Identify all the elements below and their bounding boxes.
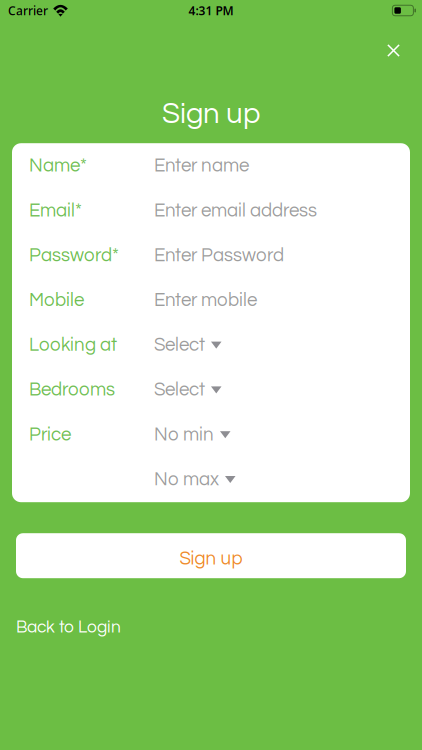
button[interactable]: Looking at [29, 323, 393, 367]
button[interactable]: Password* [29, 233, 393, 278]
button[interactable]: Sign up [16, 533, 406, 578]
staticText: Sign up [179, 549, 242, 568]
staticText: Price [29, 425, 71, 444]
staticText: Sign up [162, 99, 260, 129]
staticText: 4:31 PM [188, 2, 233, 18]
staticText: Name* [29, 156, 87, 175]
staticText: Select [154, 380, 205, 399]
staticText: Looking at [29, 335, 117, 355]
staticText: Email* [29, 201, 82, 220]
button[interactable] [29, 457, 393, 502]
staticText: Enter email address [154, 201, 317, 220]
staticText: Enter mobile [154, 291, 257, 310]
staticText: Select [154, 335, 205, 355]
button[interactable]: Back to Login [16, 578, 406, 652]
staticText: No max [154, 470, 219, 489]
staticText: Back to Login [16, 618, 121, 636]
button[interactable]: Price [29, 412, 393, 457]
staticText: Bedrooms [29, 380, 115, 399]
button[interactable]: Email* [29, 188, 393, 233]
staticText: Password* [29, 246, 119, 265]
staticText: Mobile [29, 291, 84, 310]
staticText: No min [154, 425, 214, 444]
button[interactable]: Mobile [29, 278, 393, 323]
staticText: Enter Password [154, 246, 284, 265]
staticText: Carrier [8, 2, 48, 18]
staticText: Enter name [154, 156, 249, 175]
button[interactable]: Bedrooms [29, 367, 393, 412]
button[interactable]: Name* [29, 143, 393, 188]
button[interactable]: Close [375, 21, 410, 67]
